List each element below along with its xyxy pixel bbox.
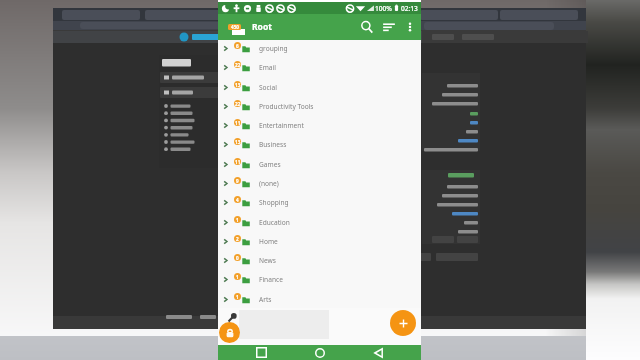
button[interactable]: Search in database bbox=[227, 312, 238, 323]
staticText: 0 bbox=[236, 255, 239, 261]
button[interactable]: More options bbox=[400, 14, 420, 40]
staticText: Finance bbox=[259, 275, 283, 284]
button[interactable]: 4 bbox=[218, 193, 421, 212]
staticText: Arts bbox=[259, 295, 272, 304]
button[interactable]: 13 bbox=[218, 135, 421, 154]
button[interactable]: 0 bbox=[218, 251, 421, 270]
staticText: 02:13 bbox=[401, 4, 418, 13]
staticText: 11 bbox=[235, 120, 241, 126]
staticText: Shopping bbox=[259, 198, 289, 207]
staticText: Productivity Tools bbox=[259, 102, 314, 111]
staticText: 4 bbox=[236, 197, 239, 203]
button[interactable]: 1 bbox=[218, 270, 421, 289]
staticText: Games bbox=[259, 160, 281, 169]
staticText: Social bbox=[259, 83, 277, 92]
button[interactable]: 11 bbox=[218, 116, 421, 135]
staticText: Email bbox=[259, 63, 276, 72]
staticText: 6 bbox=[236, 43, 239, 49]
button[interactable]: Home bbox=[305, 345, 335, 360]
button[interactable]: 1 bbox=[218, 290, 421, 309]
button[interactable]: 1 bbox=[218, 213, 421, 232]
button[interactable]: Lock database bbox=[219, 322, 240, 343]
button[interactable]: 2 bbox=[218, 232, 421, 251]
button[interactable]: Search bbox=[356, 14, 378, 40]
button[interactable]: 9 bbox=[218, 174, 421, 193]
staticText: 450 bbox=[231, 24, 239, 30]
staticText: Entertainment bbox=[259, 121, 304, 130]
staticText: News bbox=[259, 256, 276, 265]
staticText: 2 bbox=[236, 236, 239, 242]
staticText: 9 bbox=[236, 178, 239, 184]
button[interactable]: 11 bbox=[218, 155, 421, 174]
staticText: 22 bbox=[235, 101, 241, 107]
staticText: 22 bbox=[235, 62, 241, 68]
staticText: Home bbox=[259, 237, 278, 246]
button[interactable]: Recents bbox=[246, 345, 276, 360]
staticText: 11 bbox=[235, 159, 241, 165]
staticText: Root bbox=[252, 21, 272, 33]
button[interactable]: Add entry bbox=[390, 310, 416, 336]
button[interactable]: 6 bbox=[218, 39, 421, 58]
staticText: 1 bbox=[236, 274, 239, 280]
staticText: Education bbox=[259, 218, 290, 227]
button[interactable]: Sort bbox=[378, 14, 400, 40]
staticText: Business bbox=[259, 140, 287, 149]
staticText: 13 bbox=[235, 82, 241, 88]
staticText: (none) bbox=[259, 179, 279, 188]
staticText: grouping bbox=[259, 44, 288, 53]
staticText: 100% bbox=[375, 4, 392, 13]
button[interactable]: 22 bbox=[218, 58, 421, 77]
staticText: 1 bbox=[236, 217, 239, 223]
staticText: 13 bbox=[235, 139, 241, 145]
staticText: 1 bbox=[236, 294, 239, 300]
button[interactable]: Back bbox=[363, 345, 393, 360]
button[interactable]: 22 bbox=[218, 97, 421, 116]
button[interactable]: 13 bbox=[218, 78, 421, 97]
